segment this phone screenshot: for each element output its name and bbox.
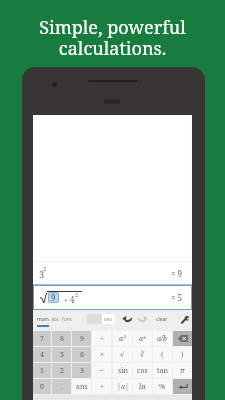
button[interactable]: tan	[153, 363, 172, 378]
staticText: 5	[60, 350, 64, 360]
button[interactable]: ∛	[133, 347, 152, 362]
button[interactable]: Redo	[138, 315, 148, 323]
staticText: %	[159, 382, 166, 392]
staticText: −	[99, 366, 104, 376]
staticText: = 5	[171, 292, 183, 303]
staticText: a/b	[157, 334, 168, 344]
button[interactable]: .	[52, 379, 71, 394]
staticText: |a|	[117, 382, 129, 392]
staticText: 9	[80, 334, 84, 344]
button[interactable]: ÷	[92, 331, 111, 346]
staticText: +	[100, 382, 104, 392]
button[interactable]: −	[92, 363, 111, 378]
staticText: 1	[40, 366, 44, 376]
staticText: )	[181, 350, 184, 360]
button[interactable]: 9	[33, 285, 192, 310]
button[interactable]: 6	[72, 347, 91, 362]
button[interactable]: |a|	[113, 379, 132, 394]
button[interactable]: ans	[72, 379, 91, 394]
staticText: clear	[156, 316, 168, 323]
button[interactable]: 3	[72, 363, 91, 378]
staticText: = 9	[171, 268, 183, 279]
staticText: Simple, powerful calculations.	[39, 15, 186, 61]
button[interactable]: π	[173, 363, 192, 378]
button[interactable]: 2	[52, 363, 71, 378]
button[interactable]: DEG	[87, 314, 115, 324]
button[interactable]	[173, 331, 192, 346]
button[interactable]: 8	[52, 331, 71, 346]
button[interactable]: Undo	[122, 315, 132, 323]
staticText: ∛	[140, 351, 145, 359]
button[interactable]: )	[173, 347, 192, 362]
staticText: tan	[157, 366, 168, 376]
staticText: 2	[43, 265, 47, 273]
button[interactable]: a²	[113, 331, 132, 346]
staticText: abc	[51, 316, 60, 323]
button[interactable]: 9	[72, 331, 91, 346]
button[interactable]: 0	[33, 379, 51, 394]
staticText: .	[61, 382, 63, 392]
button[interactable]: abc	[51, 316, 60, 323]
button[interactable]: ln	[133, 379, 152, 394]
staticText: a²	[119, 334, 126, 344]
button[interactable]: 4	[33, 347, 51, 362]
staticText: cos	[137, 366, 148, 376]
button[interactable]: (	[153, 347, 172, 362]
staticText: π	[180, 366, 185, 376]
staticText: ans	[76, 382, 88, 392]
staticText: DEG	[104, 317, 113, 322]
staticText: 9	[51, 292, 56, 303]
button[interactable]: 5	[52, 347, 71, 362]
button[interactable]: %	[153, 379, 172, 394]
staticText: 6	[80, 350, 84, 360]
staticText: main	[37, 316, 49, 323]
button[interactable]: +	[92, 379, 111, 394]
button[interactable]: clear	[156, 316, 168, 323]
button[interactable]: main	[37, 316, 49, 323]
button[interactable]: √	[113, 347, 132, 362]
button[interactable]: a/b	[153, 331, 172, 346]
staticText: ÷	[100, 334, 104, 344]
button[interactable]: aᵇ	[133, 331, 152, 346]
button[interactable]: sin	[113, 363, 132, 378]
staticText: +	[64, 296, 68, 306]
staticText: 4	[40, 350, 44, 360]
staticText: 3	[39, 268, 45, 280]
button[interactable]: 1	[33, 363, 51, 378]
button[interactable]: cos	[133, 363, 152, 378]
staticText: sin	[118, 366, 128, 376]
button[interactable]: func	[62, 316, 73, 323]
staticText: (	[161, 350, 164, 360]
staticText: 3	[80, 366, 84, 376]
button[interactable]: ×	[92, 347, 111, 362]
staticText: 0	[40, 382, 44, 392]
staticText: aᵇ	[139, 334, 146, 344]
staticText: func	[62, 316, 73, 323]
button[interactable]	[173, 379, 192, 394]
button[interactable]: 7	[33, 331, 51, 346]
staticText: ln	[139, 382, 146, 392]
button[interactable]: Settings	[180, 315, 189, 324]
staticText: 2	[75, 291, 79, 299]
staticText: 8	[60, 334, 64, 344]
staticText: 4	[70, 294, 75, 305]
staticText: ×	[100, 350, 104, 360]
staticText: √	[120, 351, 125, 359]
staticText: 2	[60, 366, 64, 376]
staticText: 7	[40, 334, 44, 344]
